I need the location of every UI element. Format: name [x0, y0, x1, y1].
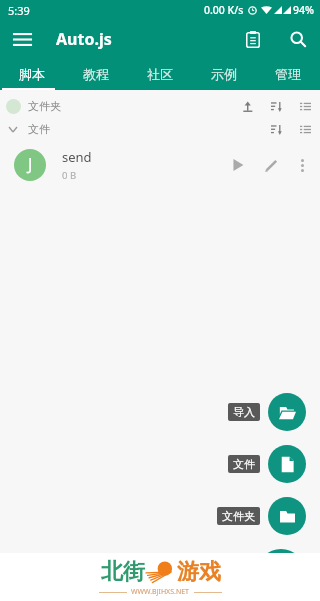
staticText: Auto.js [56, 28, 112, 50]
staticText: 导入 [233, 405, 255, 419]
button[interactable]: 文件 [0, 117, 320, 140]
button[interactable]: Go up [236, 95, 258, 117]
staticText: 游戏 [177, 558, 221, 586]
button[interactable]: 脚本 [0, 58, 64, 90]
button[interactable]: Import file [268, 393, 306, 431]
button[interactable]: 管理 [256, 58, 320, 90]
button[interactable]: Sort [265, 118, 287, 140]
button[interactable]: 社区 [128, 58, 192, 90]
staticText: 文件 [233, 457, 255, 471]
button[interactable]: Sort [265, 95, 287, 117]
button[interactable]: Edit script [257, 151, 285, 179]
staticText: J [28, 153, 33, 175]
staticText: 社区 [147, 66, 173, 82]
button[interactable]: New folder [268, 497, 306, 535]
staticText: WWW.BJIHXS.NET [131, 587, 190, 597]
staticText: 0 B [62, 169, 77, 182]
button[interactable]: Console log [236, 22, 270, 56]
staticText: 示例 [211, 66, 237, 82]
button[interactable]: 教程 [64, 58, 128, 90]
staticText: send [62, 148, 92, 166]
button[interactable]: 文件夹 [217, 507, 260, 525]
staticText: 5:39 [8, 3, 30, 18]
button[interactable]: 导入 [228, 403, 260, 421]
button[interactable]: New file [268, 445, 306, 483]
button[interactable]: 文件 [228, 455, 260, 473]
button[interactable]: 文件夹 [0, 94, 320, 117]
staticText: 文件夹 [222, 509, 255, 523]
button[interactable]: More options [288, 151, 316, 179]
button[interactable]: Search [281, 22, 315, 56]
staticText: 北街 [101, 558, 145, 586]
staticText: 0.00 K/s [204, 3, 244, 17]
button[interactable]: 示例 [192, 58, 256, 90]
button[interactable]: View options [294, 118, 316, 140]
staticText: 文件 [28, 122, 50, 136]
button[interactable]: J [0, 140, 320, 190]
staticText: 脚本 [19, 66, 45, 82]
staticText: 文件夹 [28, 99, 61, 113]
staticText: 94% [293, 3, 314, 17]
button[interactable]: Open navigation menu [5, 22, 39, 56]
button[interactable]: Add [257, 549, 305, 597]
staticText: 教程 [83, 66, 109, 82]
button[interactable]: View options [294, 95, 316, 117]
button[interactable]: Run script [224, 151, 252, 179]
staticText: 管理 [275, 66, 301, 82]
